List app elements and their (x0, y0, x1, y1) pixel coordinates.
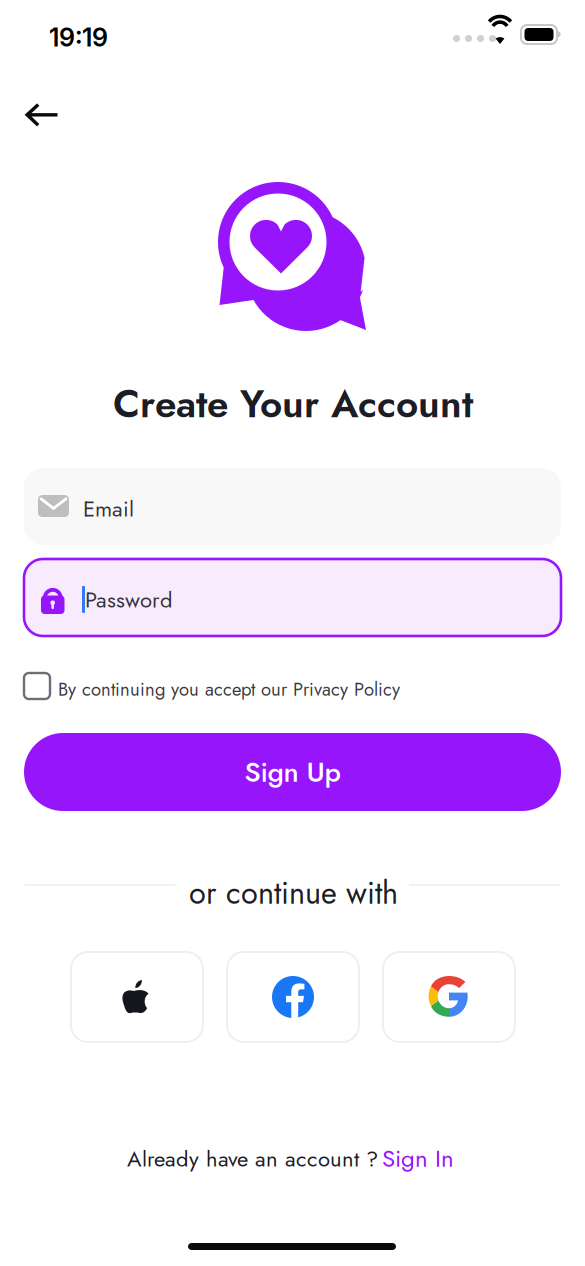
staticText: By continuing you accept our Privacy Pol… (58, 676, 400, 703)
staticText: Sign In (382, 1141, 454, 1176)
button[interactable]: Back (15, 90, 69, 140)
staticText: Create Your Account (113, 376, 473, 432)
button[interactable]: By continuing you accept our Privacy Pol… (24, 666, 404, 706)
staticText: Sign Up (244, 752, 340, 792)
button[interactable]: Sign Up (24, 733, 561, 811)
staticText: Password (85, 584, 173, 616)
staticText: Email (83, 493, 134, 525)
button[interactable]: Sign In (382, 1141, 454, 1176)
button[interactable]: Continue with Google (383, 952, 515, 1042)
staticText: Already have an account ? (127, 1143, 378, 1175)
button[interactable]: Continue with Apple (71, 952, 203, 1042)
staticText: 19:19 (49, 22, 108, 53)
staticText: or continue with (189, 871, 398, 915)
button[interactable]: Continue with Facebook (227, 952, 359, 1042)
